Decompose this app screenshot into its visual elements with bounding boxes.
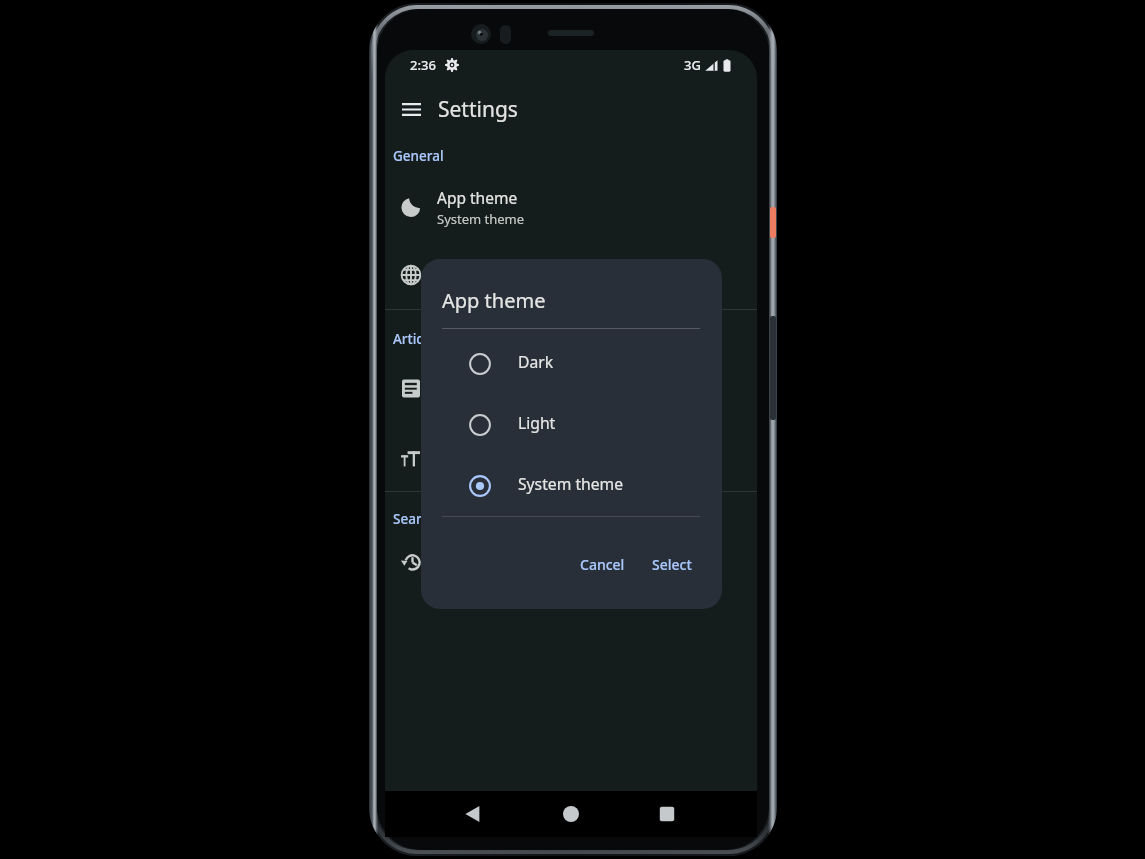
button[interactable]: Recent apps bbox=[649, 796, 685, 832]
staticText: General bbox=[393, 147, 444, 165]
button[interactable]: Search history bbox=[385, 534, 757, 590]
staticText: App theme bbox=[442, 287, 546, 314]
staticText: System default bbox=[437, 278, 528, 296]
button[interactable]: Back bbox=[455, 796, 491, 832]
staticText: Language bbox=[437, 255, 510, 276]
button[interactable]: Home bbox=[553, 796, 589, 832]
button[interactable]: Cancel bbox=[568, 547, 637, 582]
staticText: Light bbox=[518, 412, 556, 433]
staticText: Settings bbox=[438, 95, 518, 124]
staticText: Article bbox=[393, 330, 435, 348]
button[interactable]: Article layout bbox=[385, 361, 757, 417]
button[interactable]: Volume bbox=[770, 316, 776, 420]
button[interactable]: Text size bbox=[385, 430, 757, 486]
button[interactable]: Light bbox=[421, 394, 722, 455]
staticText: System theme bbox=[437, 210, 525, 228]
staticText: Dark bbox=[518, 351, 554, 372]
button[interactable]: Open navigation drawer bbox=[391, 89, 431, 129]
staticText: Select bbox=[652, 555, 692, 574]
button[interactable]: Search bbox=[393, 509, 437, 529]
staticText: Search bbox=[393, 510, 437, 528]
staticText: Normal bbox=[437, 461, 483, 479]
staticText: 3G bbox=[684, 56, 701, 74]
staticText: App theme bbox=[437, 187, 518, 208]
button[interactable]: Select bbox=[640, 547, 704, 582]
button[interactable]: Power bbox=[770, 207, 776, 238]
button[interactable]: App theme bbox=[385, 179, 757, 235]
staticText: Article layout bbox=[437, 369, 533, 390]
button[interactable]: General bbox=[393, 146, 444, 166]
button[interactable]: System theme bbox=[421, 455, 722, 516]
button[interactable]: Article bbox=[393, 329, 435, 349]
staticText: System theme bbox=[518, 473, 624, 494]
button[interactable]: Dark bbox=[421, 333, 722, 394]
staticText: Cancel bbox=[580, 555, 625, 574]
staticText: 2:36 bbox=[410, 56, 436, 74]
button[interactable]: Language bbox=[385, 247, 757, 303]
